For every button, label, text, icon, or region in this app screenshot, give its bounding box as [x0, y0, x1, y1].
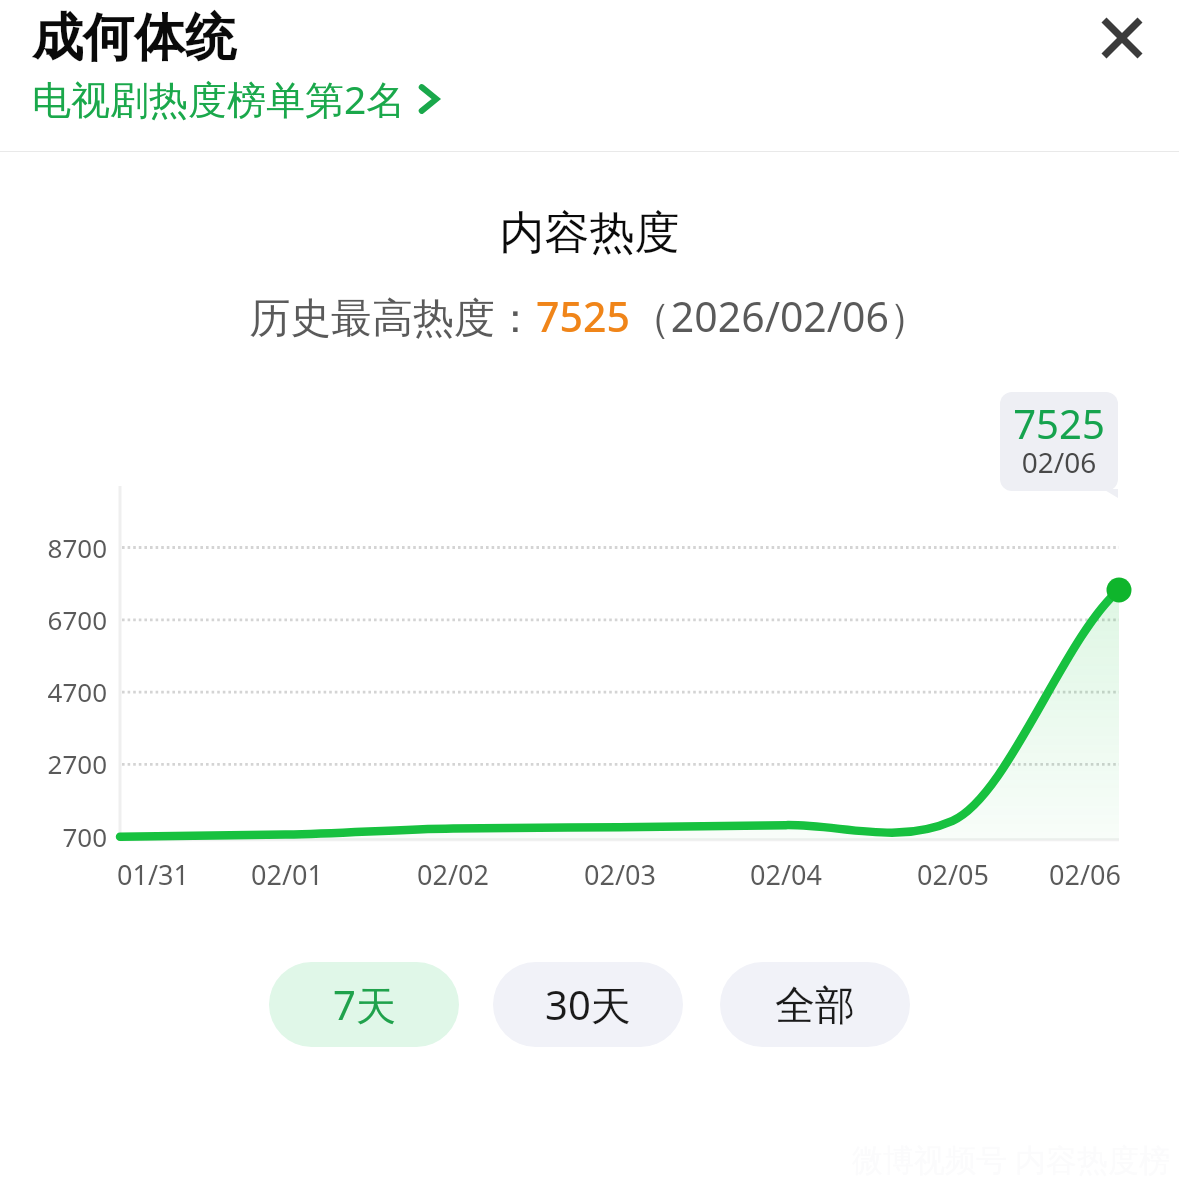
staticText: 700	[0, 819, 107, 854]
button[interactable]: 7天	[269, 962, 459, 1047]
staticText: 6700	[0, 602, 107, 637]
staticText: 2700	[0, 746, 107, 781]
button[interactable]: 30天	[493, 962, 683, 1047]
staticText: 02/04	[736, 856, 836, 893]
staticText: 历史最高热度：7525（2026/02/06）	[0, 288, 1179, 344]
button[interactable]: Close	[1092, 8, 1152, 68]
staticText: 01/31	[103, 856, 203, 893]
staticText: 4700	[0, 674, 107, 709]
staticText: 02/03	[570, 856, 670, 893]
staticText: 02/01	[237, 856, 337, 893]
staticText: 8700	[0, 530, 107, 565]
staticText: 电视剧热度榜单第2名	[32, 72, 406, 125]
staticText: 02/06	[1000, 443, 1118, 481]
staticText: 7天	[333, 977, 396, 1032]
staticText: 02/02	[403, 856, 503, 893]
staticText: 内容热度	[0, 205, 1179, 262]
staticText: 成何体统	[32, 6, 236, 70]
button[interactable]: 全部	[720, 962, 910, 1047]
staticText: 全部	[775, 980, 855, 1030]
button[interactable]: 电视剧热度榜单第2名	[32, 72, 442, 125]
staticText: 7525	[1000, 396, 1118, 450]
staticText: 02/06	[1035, 856, 1135, 893]
staticText: 02/05	[903, 856, 1003, 893]
staticText: 30天	[545, 977, 631, 1032]
